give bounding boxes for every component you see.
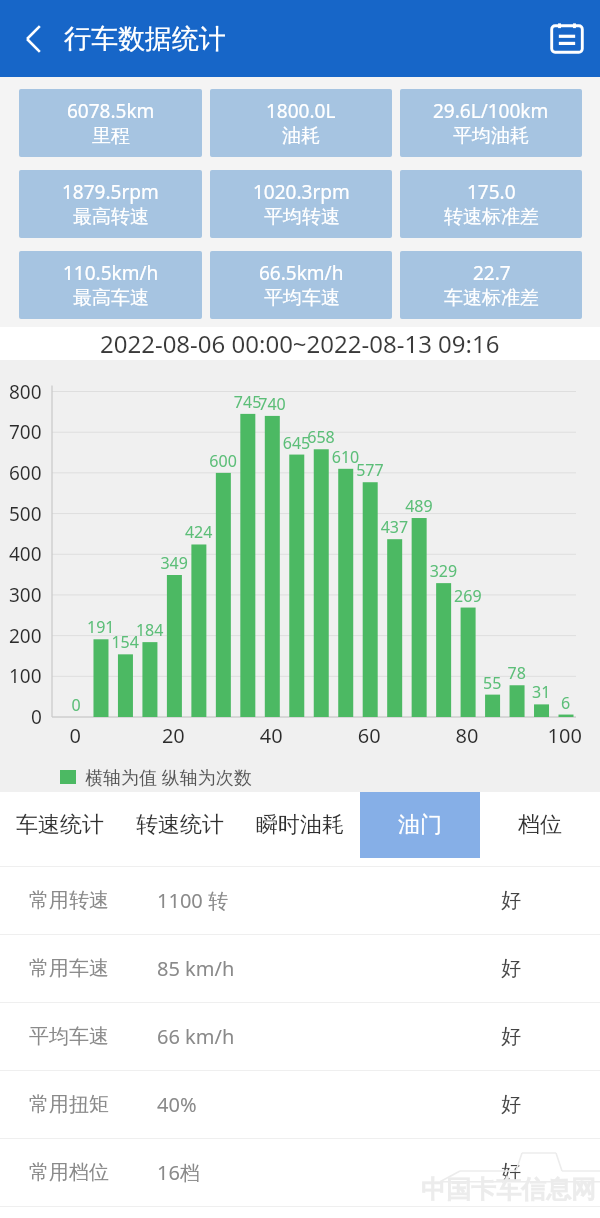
staticText: 175.0: [467, 179, 516, 205]
staticText: 平均油耗: [453, 124, 529, 148]
button[interactable]: 1020.3rpm: [210, 170, 392, 238]
staticText: 油门: [398, 811, 442, 839]
staticText: 最高转速: [73, 205, 149, 229]
staticText: 66.5km/h: [259, 260, 344, 286]
staticText: 66 km/h: [157, 1023, 235, 1050]
staticText: 好: [501, 956, 521, 981]
staticText: 车速统计: [16, 811, 104, 839]
button[interactable]: 常用扭矩: [0, 1071, 600, 1138]
staticText: 转速标准差: [444, 205, 539, 229]
staticText: 110.5km/h: [63, 260, 159, 286]
staticText: 29.6L/100km: [433, 98, 549, 124]
staticText: 好: [501, 1160, 521, 1185]
button[interactable]: 6078.5km: [19, 89, 202, 157]
button[interactable]: 1800.0L: [210, 89, 392, 157]
staticText: 油耗: [282, 124, 320, 148]
staticText: 6078.5km: [67, 98, 155, 124]
button[interactable]: 常用转速: [0, 867, 600, 934]
staticText: 16档: [157, 1159, 200, 1186]
button[interactable]: 66.5km/h: [210, 251, 392, 319]
button[interactable]: 平均车速: [0, 1003, 600, 1070]
staticText: 档位: [518, 811, 562, 839]
staticText: 常用转速: [29, 888, 109, 913]
button[interactable]: 常用档位: [0, 1139, 600, 1206]
button[interactable]: Report: [543, 15, 591, 63]
staticText: 最高车速: [73, 286, 149, 310]
staticText: 1100 转: [157, 887, 228, 914]
button[interactable]: 22.7: [400, 251, 582, 319]
staticText: 里程: [92, 124, 130, 148]
button[interactable]: 油门: [360, 792, 480, 858]
staticText: 好: [501, 888, 521, 913]
staticText: 1020.3rpm: [253, 179, 350, 205]
staticText: 平均转速: [264, 205, 340, 229]
staticText: 行车数据统计: [64, 22, 226, 56]
staticText: 1879.5rpm: [62, 179, 159, 205]
button[interactable]: 175.0: [400, 170, 582, 238]
staticText: 平均车速: [264, 286, 340, 310]
button[interactable]: 1879.5rpm: [19, 170, 202, 238]
staticText: 常用车速: [29, 956, 109, 981]
button[interactable]: 110.5km/h: [19, 251, 202, 319]
button[interactable]: 车速统计: [0, 792, 120, 858]
staticText: 瞬时油耗: [256, 811, 344, 839]
staticText: 常用档位: [29, 1160, 109, 1185]
button[interactable]: 瞬时油耗: [240, 792, 360, 858]
button[interactable]: 29.6L/100km: [400, 89, 582, 157]
staticText: 好: [501, 1024, 521, 1049]
button[interactable]: 档位: [480, 792, 600, 858]
staticText: 1800.0L: [266, 98, 336, 124]
button[interactable]: 转速统计: [120, 792, 240, 858]
staticText: 转速统计: [136, 811, 224, 839]
button[interactable]: 常用车速: [0, 935, 600, 1002]
staticText: 常用扭矩: [29, 1092, 109, 1117]
staticText: 车速标准差: [444, 286, 539, 310]
staticText: 40%: [157, 1091, 197, 1118]
button[interactable]: Back: [14, 17, 58, 61]
staticText: 22.7: [473, 260, 511, 286]
staticText: 85 km/h: [157, 955, 235, 982]
staticText: 平均车速: [29, 1024, 109, 1049]
staticText: 好: [501, 1092, 521, 1117]
staticText: 2022-08-06 00:00~2022-08-13 09:16: [100, 327, 500, 360]
